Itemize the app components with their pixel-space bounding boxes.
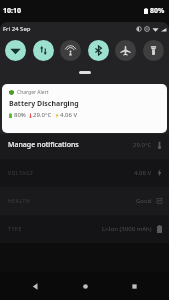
button[interactable]: Back [21,272,49,300]
staticText: 80% [150,6,165,16]
button[interactable]: Hotspot [60,40,81,61]
staticText: Good [136,197,152,205]
staticText: Manage notifications [8,140,79,150]
staticText: 29.0°C [33,111,52,119]
button[interactable]: Recents [120,272,148,300]
staticText: 10:10 [3,6,21,16]
button[interactable]: Airplane mode [115,40,136,61]
button[interactable]: Manage notifications [6,138,81,152]
staticText: 80% [14,111,26,119]
button[interactable]: Flashlight [143,40,164,61]
staticText: Li-Ion (3000 mAh) [102,225,152,233]
staticText: TYPE [8,226,22,233]
staticText: Fri 24 Sep [3,25,31,33]
button[interactable]: Home [71,272,99,300]
button[interactable]: 29.0°C [0,131,169,159]
button[interactable]: Charger Alert [2,84,167,133]
button[interactable]: TYPE [0,215,169,243]
staticText: VOLTAGE [8,170,34,177]
staticText: Battery Discharging [9,99,79,109]
button[interactable]: Bluetooth [88,40,109,61]
staticText: 29.0°C [133,141,152,149]
button[interactable]: Mobile data [33,40,54,61]
button[interactable]: VOLTAGE [0,159,169,187]
staticText: HEALTH [8,198,31,205]
staticText: 4.06 V [134,169,152,177]
staticText: 4.06 V [60,111,78,119]
staticText: Charger Alert [17,89,49,96]
button[interactable]: Wi-Fi [5,40,26,61]
button[interactable]: HEALTH [0,187,169,215]
